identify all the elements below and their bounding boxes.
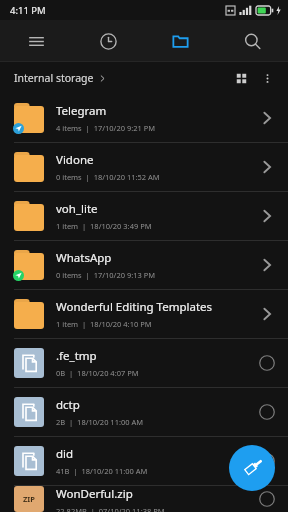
button[interactable]: dctp [0,388,288,436]
other: Open WhatsApp [256,254,278,276]
staticText: 41B | 18/10/20 11:00 AM [56,466,148,476]
button[interactable]: WhatsApp [0,241,288,289]
button[interactable]: Vidone [0,143,288,191]
button[interactable]: Menu [0,20,72,62]
staticText: WhatsApp [56,250,112,266]
staticText: 0 items | 18/10/20 11:52 AM [56,172,160,182]
staticText: voh_lite [56,201,98,217]
staticText: Internal storage [14,71,94,85]
button[interactable]: Clean up [229,445,275,491]
staticText: 1 item | 18/10/20 3:49 PM [56,221,152,231]
staticText: Wonderful Editing Templates [56,299,213,315]
button[interactable]: .fe_tmp [0,339,288,387]
staticText: 2B | 18/10/20 11:00 AM [56,417,144,427]
button[interactable]: Select .fe_tmp [256,352,278,374]
button[interactable]: Search [216,20,288,62]
staticText: 4 items | 17/10/20 9:21 PM [56,123,156,133]
button[interactable]: Telegram [0,94,288,142]
staticText: Vidone [56,152,94,168]
button[interactable]: Grid view [228,65,254,91]
staticText: did [56,446,74,462]
staticText: 1 item | 18/10/20 4:10 PM [56,319,152,329]
staticText: 0 items | 17/10/20 9:13 PM [56,270,156,280]
button[interactable]: did [0,437,288,485]
button[interactable]: Recent [72,20,144,62]
other: Open Telegram [256,107,278,129]
staticText: WonDerful.zip [56,486,133,502]
button[interactable]: ZIP [0,486,288,512]
staticText: 22.82MB | 07/10/20 11:38 PM [56,506,165,512]
other: Open Vidone [256,156,278,178]
button[interactable]: Select did [256,450,278,472]
button[interactable]: voh_lite [0,192,288,240]
staticText: 4:11 PM [10,4,46,17]
other: Open voh_lite [256,205,278,227]
button[interactable]: Wonderful Editing Templates [0,290,288,338]
staticText: dctp [56,397,80,413]
button[interactable]: Select WonDerful.zip [256,488,278,510]
staticText: 0B | 18/10/20 4:07 PM [56,368,139,378]
staticText: .fe_tmp [56,348,97,364]
other: Open Wonderful Editing Templates [256,303,278,325]
button[interactable]: More options [254,65,280,91]
button[interactable]: Files [144,20,216,62]
button[interactable]: Internal storage [14,71,108,85]
staticText: ZIP [23,494,35,504]
staticText: Telegram [56,103,107,119]
button[interactable]: Select dctp [256,401,278,423]
